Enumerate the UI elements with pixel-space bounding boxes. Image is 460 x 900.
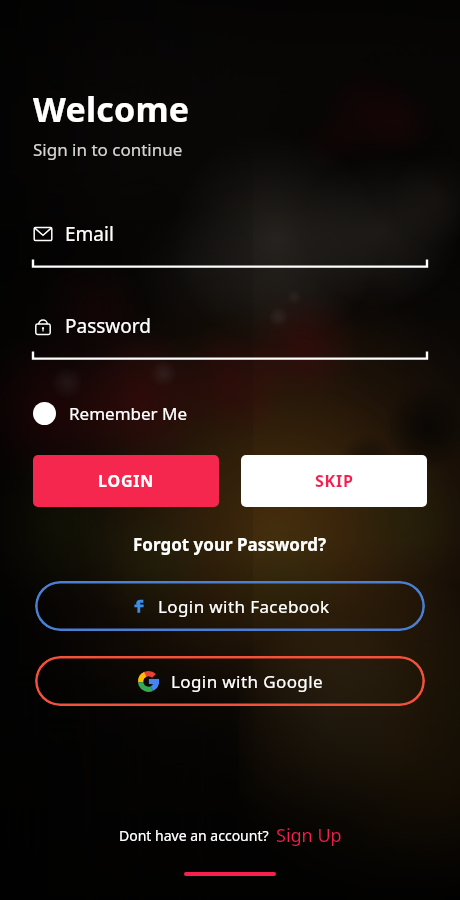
button[interactable]: Password <box>33 313 427 361</box>
staticText: Sign in to continue <box>33 138 183 161</box>
staticText: Login with Facebook <box>158 595 330 618</box>
staticText: Email <box>65 221 114 247</box>
staticText: Dont have an account? <box>119 826 269 845</box>
staticText: Password <box>65 313 151 339</box>
button[interactable]: Login with Facebook <box>35 581 425 631</box>
staticText: SKIP <box>315 470 354 492</box>
button[interactable]: Dont have an account? <box>0 823 460 848</box>
button[interactable]: Email <box>33 221 427 269</box>
staticText: LOGIN <box>98 470 155 492</box>
button[interactable]: Forgot your Password? <box>0 533 460 556</box>
button[interactable]: Login with Google <box>35 656 425 706</box>
button[interactable]: SKIP <box>241 455 427 507</box>
staticText: Login with Google <box>171 670 323 693</box>
staticText: Sign Up <box>276 823 342 848</box>
button[interactable]: Remember Me <box>33 402 188 425</box>
other: Home indicator <box>184 872 276 876</box>
staticText: Welcome <box>33 86 190 132</box>
button[interactable]: LOGIN <box>33 455 219 507</box>
staticText: Remember Me <box>69 402 188 425</box>
staticText: Forgot your Password? <box>133 533 327 556</box>
